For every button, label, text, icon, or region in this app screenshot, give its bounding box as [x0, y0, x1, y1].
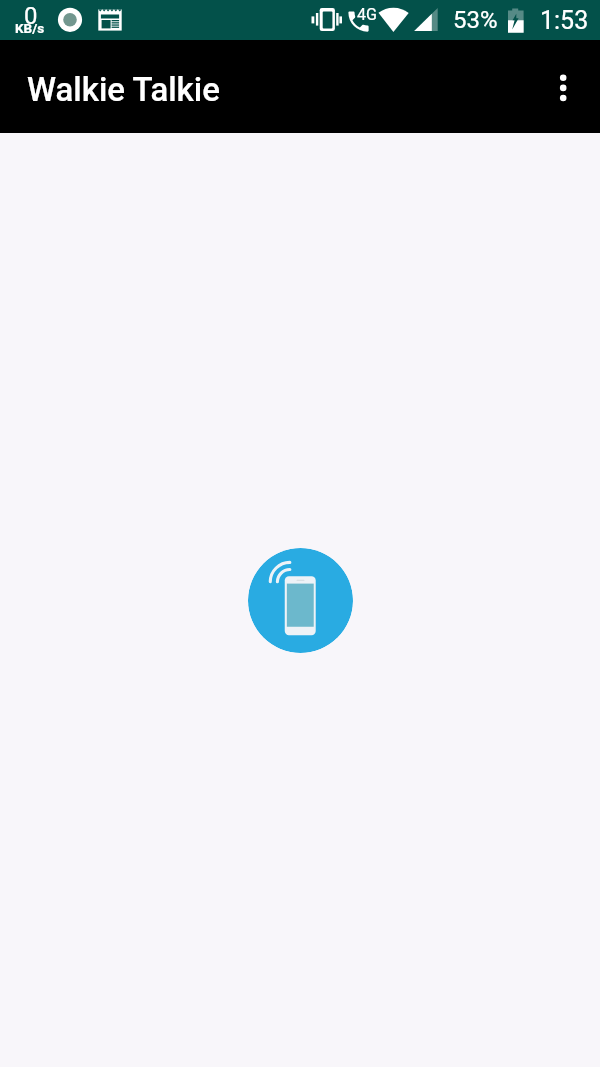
button[interactable]: Connect device	[248, 548, 353, 653]
staticText: 1:53	[540, 6, 589, 35]
staticText: Walkie Talkie	[27, 70, 220, 109]
staticText: 0	[24, 2, 38, 30]
staticText: KB/s	[15, 20, 45, 36]
button[interactable]: More options	[539, 63, 587, 111]
staticText: 4G	[357, 5, 377, 24]
staticText: 53%	[453, 6, 498, 34]
